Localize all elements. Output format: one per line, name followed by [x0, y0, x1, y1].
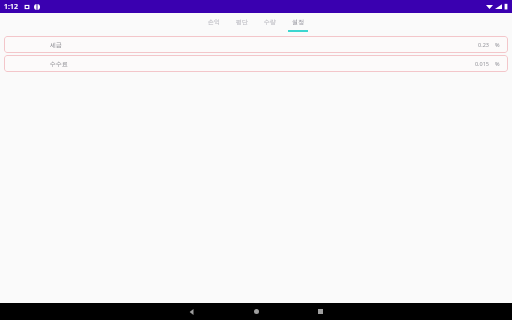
button[interactable]: 평단 [228, 15, 256, 32]
button[interactable]: 수수료 [4, 55, 508, 72]
staticText: % [495, 41, 500, 48]
staticText: 1:12 [4, 2, 18, 12]
staticText: 평단 [236, 18, 248, 26]
staticText: 0.23 [478, 41, 489, 48]
button[interactable]: Back [160, 303, 224, 320]
staticText: 세금 [50, 41, 62, 49]
staticText: 수수료 [50, 60, 68, 68]
button[interactable]: Recent apps [288, 303, 352, 320]
button[interactable]: 손익 [200, 15, 228, 32]
staticText: 0.015 [474, 60, 489, 67]
staticText: 수량 [264, 18, 276, 26]
staticText: 손익 [208, 18, 220, 26]
button[interactable]: 세금 [4, 36, 508, 53]
staticText: % [495, 60, 500, 67]
button[interactable]: 설정 [284, 15, 312, 32]
button[interactable]: 수량 [256, 15, 284, 32]
staticText: 설정 [292, 18, 304, 26]
button[interactable]: Home [224, 303, 288, 320]
